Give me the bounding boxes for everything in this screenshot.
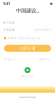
staticText: 查看全部账户 xyxy=(34,28,52,32)
button[interactable]: 微信支付 xyxy=(21,67,33,78)
staticText: 帮助中心 xyxy=(39,58,51,61)
staticText: 中国建设银行 xyxy=(16,7,39,14)
staticText: 账户总览 xyxy=(3,21,15,24)
staticText: ▮▮ xyxy=(50,2,52,5)
staticText: 立即开通 xyxy=(19,46,35,51)
staticText: 9:41 xyxy=(3,1,10,6)
staticText: 温馨提示请完成实名认证 xyxy=(8,37,41,40)
staticText: 可用余额 xyxy=(3,28,15,32)
staticText: 其他方式 xyxy=(4,58,16,61)
button[interactable]: 立即开通 xyxy=(4,45,51,52)
staticText: 微信支付 xyxy=(21,75,33,78)
